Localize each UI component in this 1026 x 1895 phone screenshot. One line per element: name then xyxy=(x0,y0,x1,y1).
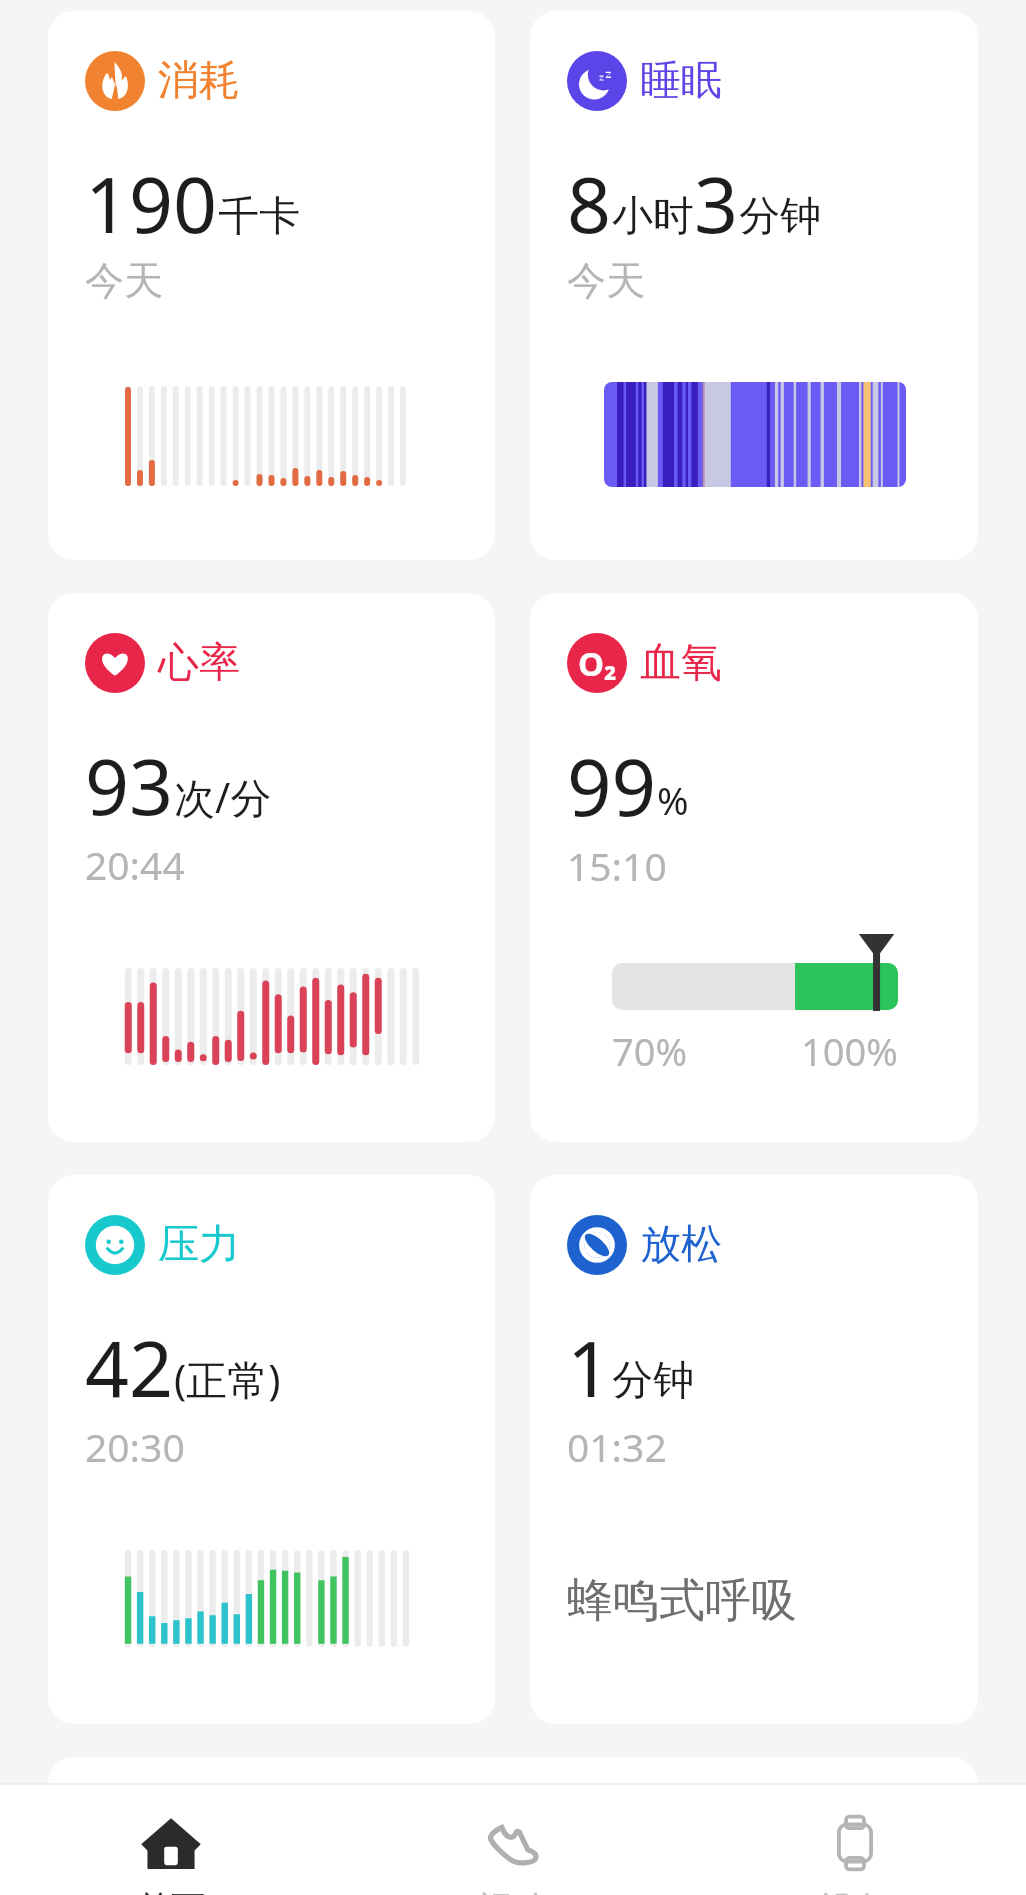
button[interactable]: 放松 xyxy=(530,1175,978,1724)
staticText: 70% xyxy=(612,1025,688,1077)
button[interactable]: 设备 xyxy=(684,1785,1026,1895)
staticText: 今天 xyxy=(85,256,163,305)
staticText: 分钟 xyxy=(612,1355,694,1407)
button[interactable]: O₂ xyxy=(530,593,978,1142)
other: 运动 xyxy=(482,1812,544,1874)
staticText: 今天 xyxy=(567,256,645,305)
button[interactable] xyxy=(48,1757,978,1895)
staticText: 睡眠 xyxy=(640,55,722,107)
staticText: 压力 xyxy=(158,1219,240,1271)
staticText: 蜂鸣式呼吸 xyxy=(567,1572,797,1630)
staticText: 01:32 xyxy=(567,1420,667,1473)
staticText: 8 xyxy=(567,151,612,256)
staticText: 93 xyxy=(85,733,174,838)
other: 首页 xyxy=(140,1812,202,1874)
staticText: 设备 xyxy=(821,1887,889,1895)
staticText: 血氧 xyxy=(640,637,722,689)
button[interactable]: 运动 xyxy=(342,1785,684,1895)
staticText: 小时 xyxy=(612,191,694,243)
staticText: O₂ xyxy=(578,641,617,686)
button[interactable]: 消耗 xyxy=(48,11,495,560)
staticText: 消耗 xyxy=(158,55,240,107)
staticText: 190 xyxy=(85,151,218,256)
button[interactable]: 心率 xyxy=(48,593,495,1142)
staticText: 99 xyxy=(567,733,657,839)
staticText: 15:10 xyxy=(567,839,667,892)
staticText: 运动 xyxy=(479,1887,547,1895)
staticText: 千卡 xyxy=(218,191,300,243)
staticText: 100% xyxy=(801,1025,898,1077)
button[interactable]: 压力 xyxy=(48,1175,495,1724)
staticText: 分钟 xyxy=(739,191,821,243)
staticText: 1 xyxy=(567,1315,612,1420)
staticText: 3 xyxy=(694,151,739,256)
staticText: 放松 xyxy=(640,1219,722,1271)
staticText: % xyxy=(657,774,689,826)
staticText: 20:44 xyxy=(85,838,185,891)
staticText: (正常) xyxy=(174,1351,281,1407)
staticText: 首页 xyxy=(137,1887,205,1895)
staticText: 20:30 xyxy=(85,1420,185,1473)
other: 设备 xyxy=(824,1812,886,1874)
staticText: 42 xyxy=(85,1315,174,1420)
staticText: 心率 xyxy=(158,637,240,689)
button[interactable]: 睡眠 xyxy=(530,11,978,560)
staticText: 次/分 xyxy=(174,769,272,825)
button[interactable]: 首页 xyxy=(0,1785,342,1895)
